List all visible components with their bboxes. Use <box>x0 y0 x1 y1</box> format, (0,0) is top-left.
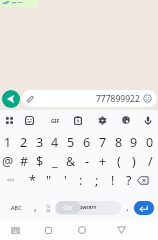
staticText: 7 <box>99 134 107 151</box>
staticText: ' <box>64 172 67 189</box>
staticText: QWERTY <box>79 205 97 211</box>
staticText: 9 <box>130 134 138 151</box>
button[interactable] <box>2 90 20 108</box>
staticText: 3 <box>36 134 44 151</box>
button[interactable]: : <box>72 171 90 189</box>
button[interactable]: * <box>23 171 41 189</box>
button[interactable]: GIF <box>46 112 64 130</box>
staticText: : <box>79 172 83 189</box>
staticText: 0 <box>146 134 154 151</box>
button[interactable]: / <box>141 152 158 170</box>
staticText: _ <box>52 153 58 170</box>
staticText: ! <box>111 172 115 189</box>
button[interactable]: 6 <box>78 133 96 151</box>
staticText: $ <box>36 153 44 170</box>
button[interactable]: 3 <box>31 133 49 151</box>
button[interactable]: ! <box>104 171 122 189</box>
staticText: 5 <box>67 134 75 151</box>
button[interactable] <box>2 114 16 128</box>
staticText: , <box>34 200 37 214</box>
staticText: ) <box>132 153 136 170</box>
button[interactable] <box>42 224 55 236</box>
staticText: 6 <box>83 134 91 151</box>
button[interactable]: 7 <box>94 133 112 151</box>
button[interactable]: ) <box>125 152 143 170</box>
staticText: 777899922 <box>96 93 140 105</box>
staticText: + <box>99 153 107 170</box>
button[interactable]: " <box>40 171 58 189</box>
staticText: @ <box>2 153 14 170</box>
button[interactable]: , <box>26 198 44 216</box>
button[interactable]: # <box>15 152 33 170</box>
staticText: " <box>46 172 52 189</box>
staticText: 1 <box>4 134 12 151</box>
button[interactable]: $ <box>31 152 49 170</box>
button[interactable]: - <box>78 152 96 170</box>
staticText: ? <box>126 172 132 189</box>
button[interactable]: 5 <box>62 133 80 151</box>
button[interactable]: 777899922 <box>22 90 157 107</box>
staticText: =\< <box>7 177 15 184</box>
button[interactable]: =\< <box>2 171 20 189</box>
button[interactable]: 1 <box>0 133 17 151</box>
staticText: 12 <box>46 204 50 208</box>
button[interactable]: 0 <box>141 133 158 151</box>
button[interactable]: 2 <box>15 133 33 151</box>
button[interactable] <box>75 224 88 236</box>
button[interactable]: . <box>118 198 136 216</box>
button[interactable]: ? <box>120 171 138 189</box>
button[interactable]: & <box>62 152 80 170</box>
staticText: / <box>148 153 153 170</box>
staticText: 2 <box>20 134 28 151</box>
staticText: GIF <box>51 118 60 125</box>
button[interactable] <box>134 201 154 215</box>
staticText: ; <box>95 172 99 189</box>
staticText: & <box>66 153 76 170</box>
button[interactable]: 12 <box>42 202 53 213</box>
staticText: ( <box>117 153 121 170</box>
button[interactable]: ( <box>110 152 128 170</box>
button[interactable] <box>9 224 22 236</box>
button[interactable]: ' <box>56 171 74 189</box>
button[interactable]: QWERTY <box>55 201 121 215</box>
button[interactable]: ABC <box>7 198 25 216</box>
button[interactable]: @ <box>0 152 17 170</box>
staticText: 4 <box>51 134 59 151</box>
staticText: 34 <box>46 208 50 212</box>
button[interactable] <box>114 224 128 236</box>
staticText: ABC <box>11 204 22 211</box>
button[interactable]: ; <box>88 171 106 189</box>
button[interactable]: 4 <box>46 133 64 151</box>
button[interactable] <box>137 176 149 185</box>
button[interactable]: 8 <box>110 133 128 151</box>
staticText: . <box>126 200 129 214</box>
staticText: * <box>29 172 36 189</box>
staticText: - <box>85 153 90 170</box>
staticText: Ge <box>63 203 73 213</box>
staticText: # <box>20 153 29 170</box>
button[interactable]: _ <box>46 152 64 170</box>
button[interactable]: + <box>94 152 112 170</box>
staticText: 8 <box>115 134 123 151</box>
button[interactable]: 9 <box>125 133 143 151</box>
